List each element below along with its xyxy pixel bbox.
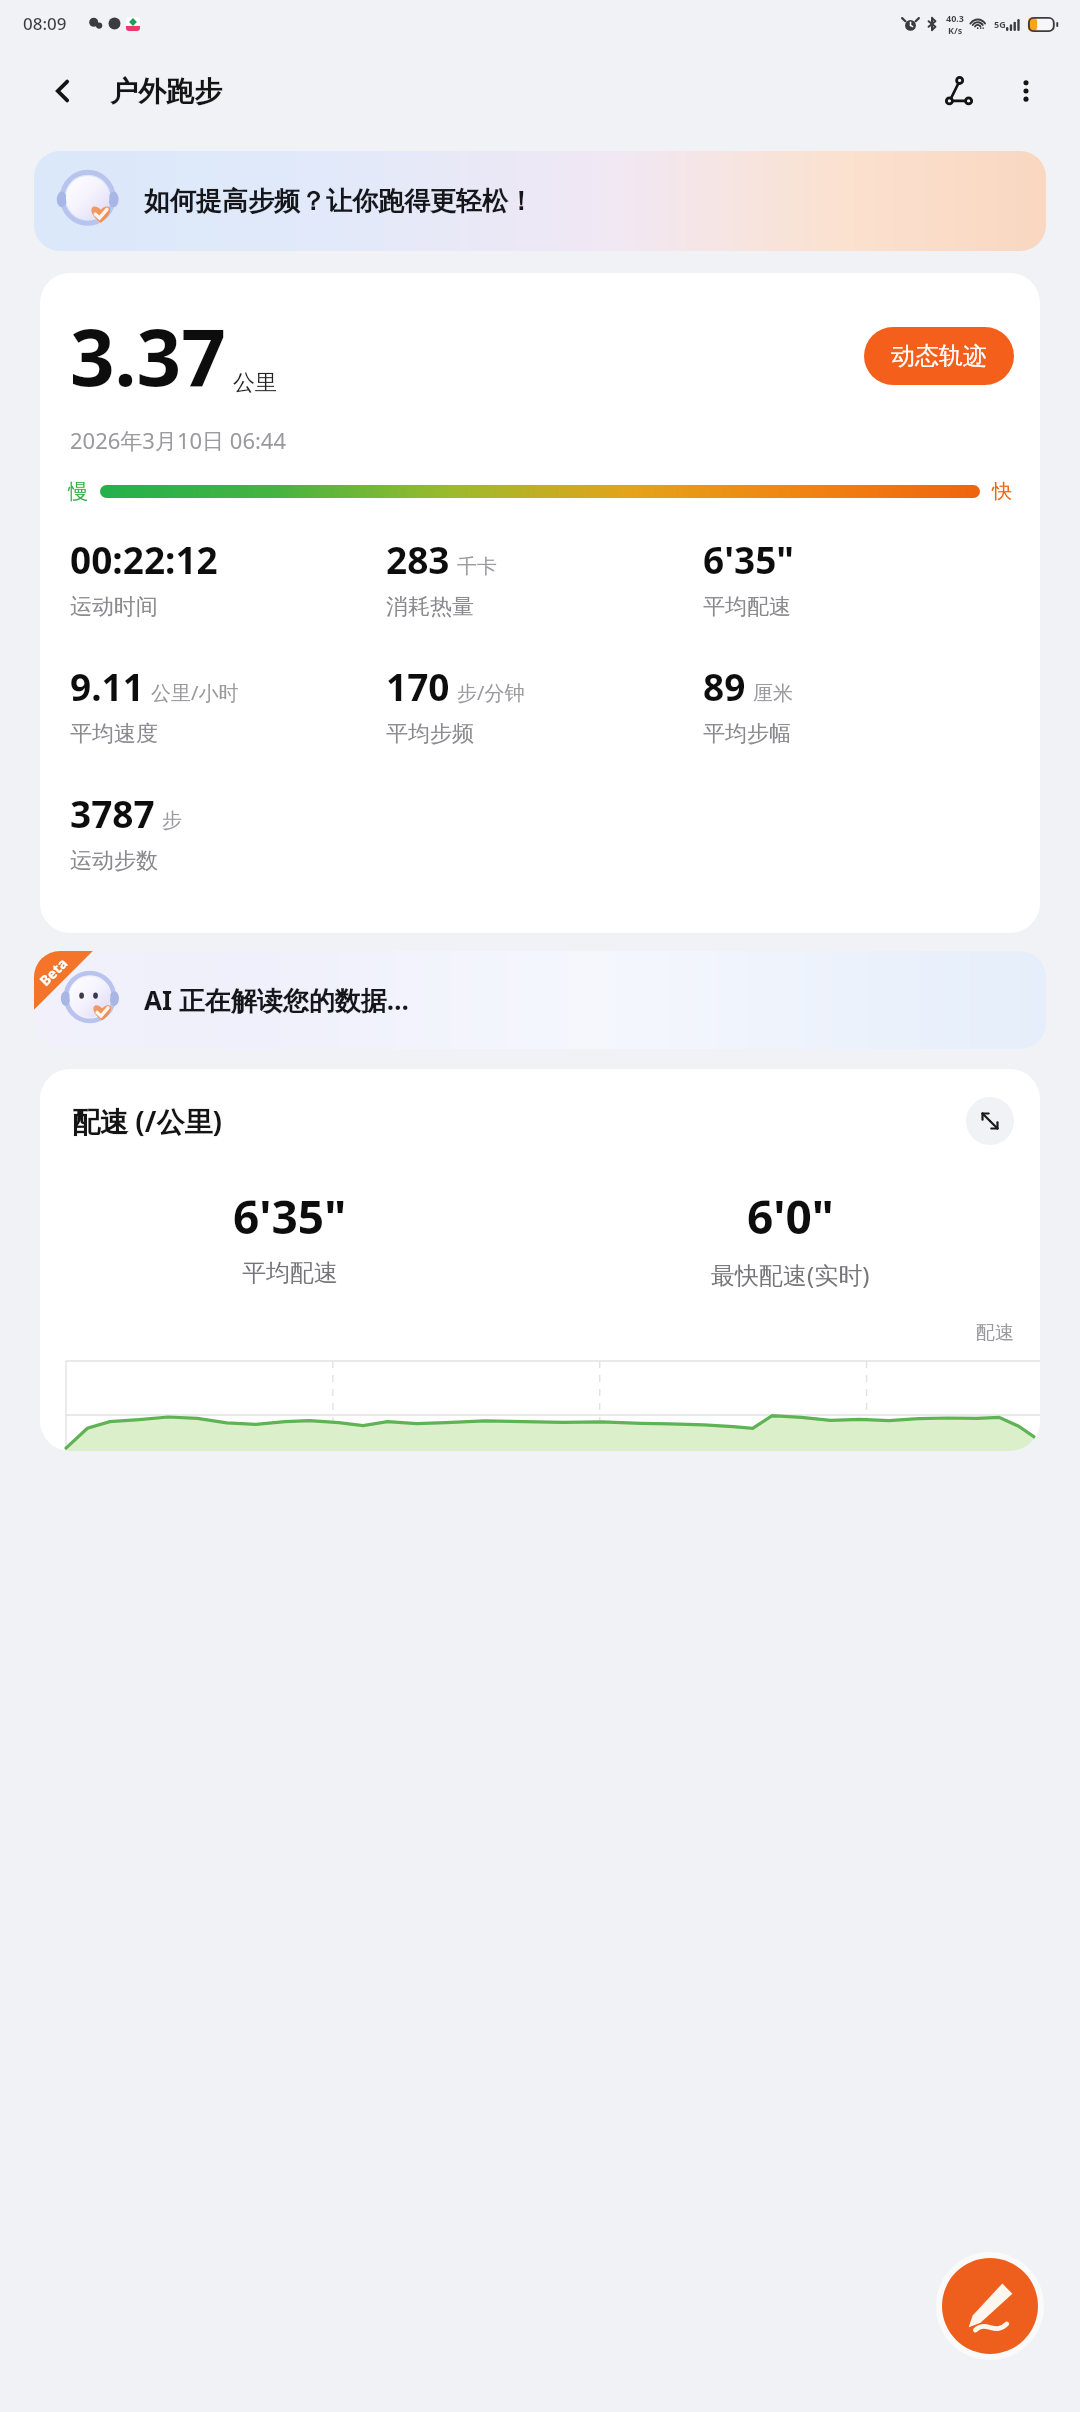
staticText: 配速 (/公里) <box>72 1102 222 1140</box>
staticText: 40.3 <box>946 12 964 24</box>
staticText: 千卡 <box>457 554 497 579</box>
staticText: 6'35" <box>703 534 795 584</box>
staticText: 89 <box>703 661 746 711</box>
staticText: 平均速度 <box>70 720 158 748</box>
staticText: 运动步数 <box>70 847 158 875</box>
staticText: 平均步频 <box>386 720 474 748</box>
staticText: 9.11 <box>70 661 144 711</box>
staticText: 最快配速(实时) <box>711 1258 870 1291</box>
button[interactable]: Edit <box>942 2258 1038 2354</box>
staticText: K/s <box>948 24 963 36</box>
staticText: 运动时间 <box>70 593 158 621</box>
button[interactable]: Back <box>38 66 88 116</box>
staticText: 厘米 <box>753 681 793 706</box>
staticText: 慢 <box>68 479 88 504</box>
staticText: 如何提高步频？让你跑得更轻松！ <box>144 185 534 218</box>
staticText: AI 正在解读您的数据… <box>144 982 410 1018</box>
staticText: 平均配速 <box>242 1258 338 1288</box>
button[interactable]: Share <box>932 64 986 118</box>
button[interactable]: More options <box>1000 65 1052 117</box>
staticText: 快 <box>992 479 1012 504</box>
staticText: 公里 <box>233 369 277 397</box>
staticText: 00:22:12 <box>70 534 218 584</box>
button[interactable]: Expand chart <box>966 1097 1014 1145</box>
staticText: 户外跑步 <box>110 74 222 109</box>
staticText: 3787 <box>70 788 155 838</box>
staticText: 步 <box>162 808 182 833</box>
staticText: 2026年3月10日 06:44 <box>70 425 287 455</box>
button[interactable]: Beta <box>34 951 1046 1049</box>
staticText: 5G <box>994 18 1006 30</box>
staticText: 动态轨迹 <box>891 341 987 371</box>
staticText: 08:09 <box>23 12 67 35</box>
staticText: 6'35" <box>233 1185 347 1248</box>
staticText: Beta <box>35 953 72 990</box>
staticText: 消耗热量 <box>386 593 474 621</box>
staticText: 6'0" <box>747 1185 834 1248</box>
staticText: 平均步幅 <box>703 720 791 748</box>
staticText: 170 <box>386 661 450 711</box>
staticText: 公里/小时 <box>151 679 239 706</box>
staticText: 平均配速 <box>703 593 791 621</box>
staticText: 3.37 <box>70 303 226 409</box>
button[interactable]: 动态轨迹 <box>864 327 1014 385</box>
staticText: 283 <box>386 534 450 584</box>
staticText: 步/分钟 <box>457 679 525 706</box>
staticText: 配速 <box>976 1321 1014 1345</box>
button[interactable]: 如何提高步频？让你跑得更轻松！ <box>34 151 1046 251</box>
